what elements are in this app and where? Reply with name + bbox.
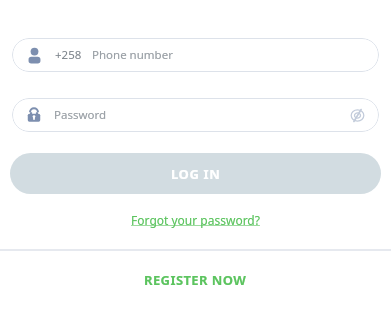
staticText: Forgot your password?: [131, 212, 260, 228]
button[interactable]: Password: [12, 98, 379, 132]
button[interactable]: Forgot your password?: [125, 209, 266, 231]
button[interactable]: REGISTER NOW: [134, 268, 257, 292]
button[interactable]: +258: [12, 38, 379, 72]
button[interactable]: Show password: [347, 105, 367, 125]
staticText: +258: [55, 47, 82, 63]
staticText: Password: [54, 107, 347, 123]
staticText: Phone number: [92, 47, 173, 63]
staticText: REGISTER NOW: [144, 271, 247, 289]
staticText: LOG IN: [171, 165, 221, 183]
button[interactable]: LOG IN: [10, 153, 381, 194]
